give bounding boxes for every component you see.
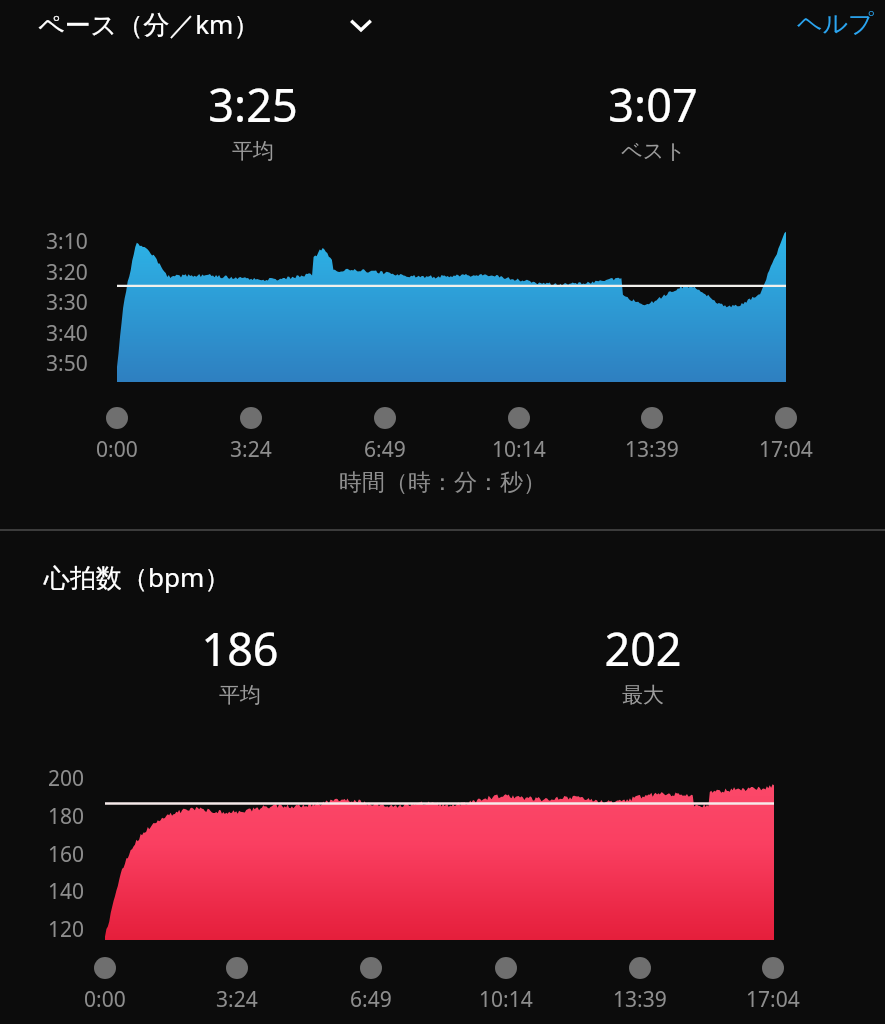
button[interactable]: ヘルプ (764, 1, 874, 45)
staticText: 平均 (232, 138, 274, 164)
staticText: 6:49 (350, 985, 392, 1014)
staticText: 3:10 (46, 227, 88, 256)
staticText: 最大 (622, 682, 664, 708)
staticText: 186 (201, 618, 279, 679)
staticText: 13:39 (625, 435, 679, 464)
staticText: 平均 (219, 682, 261, 708)
button[interactable]: ペース（分／km） (38, 3, 338, 45)
staticText: 3:07 (608, 74, 698, 135)
staticText: ベスト (621, 138, 686, 164)
button[interactable]: 心拍数（bpm） (44, 556, 344, 598)
staticText: 3:30 (46, 288, 88, 317)
button[interactable]: 指標を変更 (338, 2, 384, 48)
staticText: 0:00 (96, 435, 138, 464)
button[interactable]: 186 (130, 618, 350, 710)
staticText: 200 (48, 764, 85, 793)
staticText: 17:04 (759, 435, 813, 464)
button[interactable]: 3:07 (543, 74, 763, 166)
staticText: 6:49 (364, 435, 406, 464)
staticText: 3:50 (46, 349, 88, 378)
staticText: 3:20 (46, 258, 88, 287)
staticText: 0:00 (84, 985, 126, 1014)
staticText: ペース（分／km） (38, 6, 260, 42)
button[interactable]: 3:25 (143, 74, 363, 166)
staticText: 時間（時：分：秒） (339, 468, 546, 497)
staticText: 160 (48, 840, 85, 869)
staticText: ヘルプ (797, 8, 874, 39)
staticText: 17:04 (746, 985, 800, 1014)
staticText: 120 (48, 915, 85, 944)
button[interactable]: 202 (533, 618, 753, 710)
staticText: 心拍数（bpm） (44, 559, 231, 595)
staticText: 3:24 (230, 435, 272, 464)
staticText: 10:14 (479, 985, 533, 1014)
staticText: 10:14 (492, 435, 546, 464)
staticText: 180 (48, 802, 85, 831)
staticText: 3:24 (216, 985, 258, 1014)
staticText: 202 (604, 618, 682, 679)
staticText: 3:25 (208, 74, 298, 135)
staticText: 140 (48, 877, 85, 906)
staticText: 13:39 (613, 985, 667, 1014)
staticText: 3:40 (46, 319, 88, 348)
